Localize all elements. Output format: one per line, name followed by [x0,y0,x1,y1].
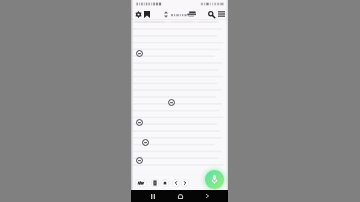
button[interactable]: Voice search [205,170,224,189]
button[interactable]: Library [151,179,159,187]
button[interactable]: Back [201,190,213,202]
button[interactable]: Verse note [136,119,143,126]
button[interactable] [164,9,198,19]
button[interactable]: Next chapter [181,179,189,187]
button[interactable]: Verse note [168,99,175,106]
button[interactable]: Settings [133,9,143,19]
button[interactable]: Handwriting [135,179,147,187]
button[interactable]: Bookmarks [142,9,152,19]
button[interactable]: Home [174,190,186,202]
button[interactable]: Highlighter [161,179,169,187]
button[interactable]: Verse note [136,50,143,57]
button[interactable]: Verse note [136,157,143,164]
button[interactable]: Recent apps [147,190,159,202]
button[interactable]: Menu [216,9,226,19]
button[interactable]: Previous chapter [172,179,180,187]
button[interactable]: Search [206,9,216,19]
button[interactable]: Verse note [142,139,149,146]
